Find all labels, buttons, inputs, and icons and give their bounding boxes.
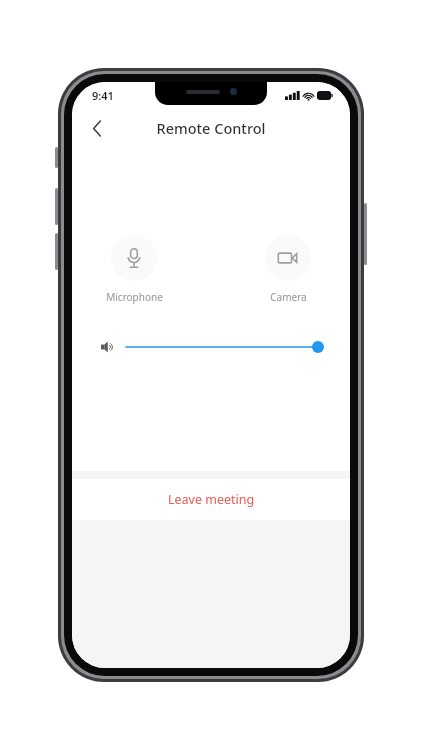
staticText: Remote Control <box>156 118 266 138</box>
button[interactable]: Camera <box>265 235 311 281</box>
button[interactable]: Microphone <box>111 235 157 281</box>
button[interactable]: Back <box>80 111 114 145</box>
staticText: Leave meeting <box>168 491 255 508</box>
staticText: 9:41 <box>92 88 114 103</box>
staticText: Camera <box>270 290 307 304</box>
button[interactable]: Volume <box>126 336 324 358</box>
staticText: Microphone <box>106 290 163 304</box>
button[interactable]: Leave meeting <box>72 479 350 520</box>
